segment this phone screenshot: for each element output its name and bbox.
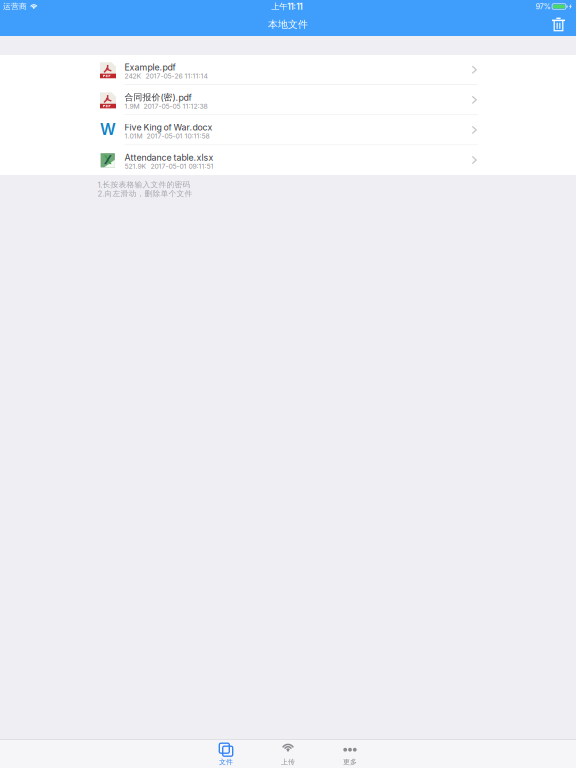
staticText: Attendance table.xlsx (124, 152, 213, 163)
staticText: W (100, 120, 116, 139)
button[interactable]: Delete (546, 13, 576, 36)
staticText: 97% (535, 2, 550, 11)
staticText: 合同报价(密).pdf (124, 92, 191, 103)
staticText: 1.长按表格输入文件的密码 (97, 180, 190, 189)
staticText: 更多 (343, 758, 357, 766)
staticText: 2.向左滑动，删除单个文件 (97, 189, 192, 198)
staticText: 1.9M 2017-05-05 11:12:38 (124, 102, 207, 110)
staticText: 运营商 (3, 2, 27, 11)
button[interactable]: Example.pdf (0, 55, 576, 84)
button[interactable]: Attendance table.xlsx (0, 145, 576, 175)
staticText: 521.9K 2017-05-01 09:11:51 (124, 162, 213, 170)
button[interactable]: 更多 (319, 740, 381, 768)
staticText: 文件 (219, 758, 233, 766)
staticText: Example.pdf (124, 62, 175, 72)
staticText: Five King of War.docx (124, 122, 212, 133)
staticText: 本地文件 (268, 18, 308, 31)
button[interactable]: 上传 (257, 740, 319, 768)
staticText: 上午11:11 (271, 1, 302, 12)
button[interactable]: 文件 (195, 740, 257, 768)
staticText: 242K 2017-05-26 11:11:14 (124, 72, 207, 80)
button[interactable]: W (0, 115, 576, 145)
staticText: 1.01M 2017-05-01 10:11:58 (124, 132, 209, 140)
button[interactable]: 合同报价(密).pdf (0, 85, 576, 115)
staticText: 上传 (281, 758, 295, 766)
